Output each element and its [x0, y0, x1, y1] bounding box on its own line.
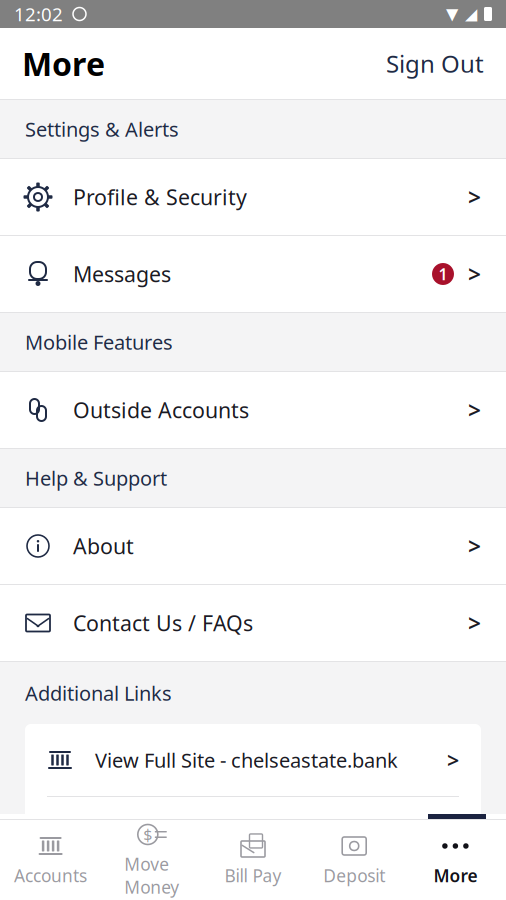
button[interactable]: Accounts — [0, 829, 101, 891]
staticText: Profile & Security — [73, 183, 247, 211]
button[interactable]: About — [0, 508, 506, 584]
staticText: > — [468, 608, 481, 638]
staticText: > — [468, 182, 481, 212]
staticText: ◢ — [465, 5, 477, 23]
button[interactable]: Profile & Security — [0, 159, 506, 235]
staticText: Additional Links — [25, 680, 172, 706]
staticText: Messages — [73, 260, 171, 288]
staticText: Move Money — [124, 852, 179, 898]
button[interactable]: Bill Pay — [202, 829, 304, 891]
button[interactable]: Messages — [0, 236, 506, 312]
staticText: > — [468, 395, 481, 425]
staticText: Mobile Features — [25, 329, 173, 355]
staticText: > — [447, 819, 459, 847]
staticText: View Full Site - chelseastate.bank — [95, 747, 398, 773]
staticText: Accounts — [14, 864, 87, 887]
staticText: More — [433, 864, 477, 887]
button[interactable]: More — [405, 829, 506, 891]
button[interactable]: Branch & ATM Locations — [25, 797, 481, 869]
staticText: Branch & ATM Locations — [95, 820, 320, 846]
staticText: $ — [143, 824, 152, 845]
staticText: ▼ — [446, 5, 458, 23]
staticText: Help & Support — [25, 465, 167, 491]
staticText: > — [447, 746, 459, 774]
button[interactable]: Deposit — [304, 829, 405, 891]
staticText: More — [22, 42, 105, 85]
button[interactable]: Outside Accounts — [0, 372, 506, 448]
staticText: Settings & Alerts — [25, 116, 179, 142]
staticText: Outside Accounts — [73, 396, 249, 424]
staticText: Bill Pay — [224, 864, 281, 887]
staticText: Deposit — [323, 864, 385, 887]
button[interactable]: View Full Site - chelseastate.bank — [25, 724, 481, 796]
staticText: 1 — [438, 263, 447, 285]
staticText: About — [73, 532, 134, 560]
staticText: Contact Us / FAQs — [73, 609, 253, 637]
button[interactable]: Sign Out — [374, 40, 484, 87]
staticText: 12:02 — [14, 2, 63, 26]
staticText: > — [468, 259, 481, 289]
staticText: Sign Out — [386, 48, 484, 79]
button[interactable]: $ — [101, 829, 202, 891]
staticText: > — [468, 531, 481, 561]
button[interactable]: Contact Us / FAQs — [0, 585, 506, 661]
